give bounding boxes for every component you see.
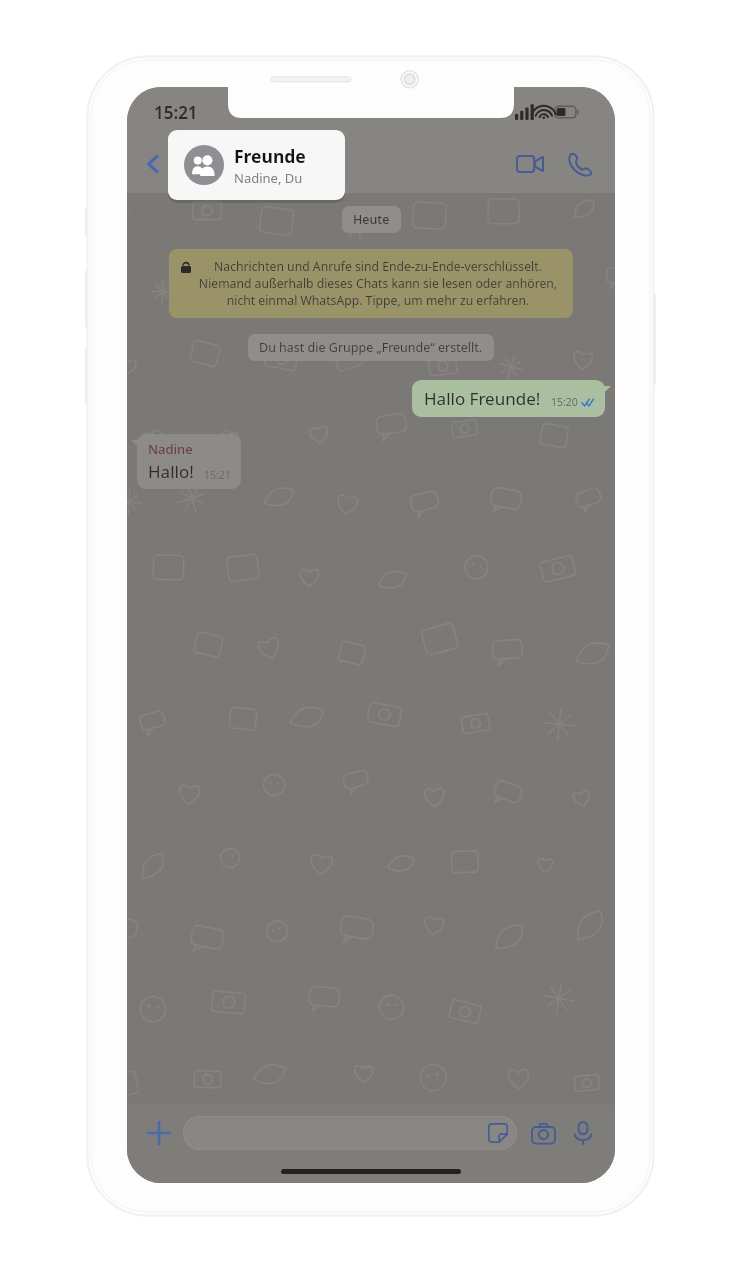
button[interactable]: Anruf: [559, 143, 601, 185]
staticText: Freunde: [234, 144, 306, 168]
button[interactable]: Heute: [342, 206, 401, 233]
staticText: Heute: [353, 211, 390, 228]
staticText: 15:21: [154, 101, 198, 124]
button[interactable]: Hallo Freunde!: [412, 380, 605, 417]
staticText: Nadine, Du: [234, 169, 303, 187]
button[interactable]: Nachrichten und Anrufe sind Ende-zu-Ende…: [169, 249, 573, 318]
staticText: Hallo Freunde!: [424, 387, 541, 410]
staticText: Du hast die Gruppe „Freunde“ erstellt.: [259, 339, 483, 356]
staticText: Nadine: [148, 440, 193, 458]
button[interactable]: Nadine: [137, 434, 241, 489]
button[interactable]: Zurück: [131, 142, 175, 186]
button[interactable]: [183, 1116, 517, 1150]
button[interactable]: Videoanruf: [509, 143, 551, 185]
button[interactable]: Kamera: [523, 1113, 563, 1153]
button[interactable]: Freunde: [168, 130, 345, 200]
staticText: 15:21: [204, 468, 231, 482]
staticText: 15:20: [551, 395, 578, 409]
button[interactable]: Du hast die Gruppe „Freunde“ erstellt.: [248, 334, 494, 361]
button[interactable]: Sprachnachricht: [563, 1113, 603, 1153]
staticText: Nachrichten und Anrufe sind Ende-zu-Ende…: [195, 258, 561, 309]
staticText: Hallo!: [148, 460, 194, 483]
button[interactable]: Anhängen: [139, 1113, 179, 1153]
